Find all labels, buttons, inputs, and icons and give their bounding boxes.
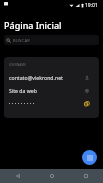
staticText: BUSCAR bbox=[13, 38, 31, 43]
button[interactable] bbox=[4, 97, 99, 110]
button[interactable]: Apps bbox=[82, 150, 97, 165]
button[interactable]: Home bbox=[35, 169, 69, 183]
staticText: contato@viekrond.net bbox=[9, 74, 84, 81]
staticText: Página Inicial bbox=[4, 19, 62, 31]
button[interactable]: Back bbox=[0, 169, 35, 183]
staticText: Site da web bbox=[9, 87, 84, 94]
button[interactable]: Página Inicial bbox=[4, 19, 62, 31]
button[interactable]: contato@viekrond.net bbox=[4, 71, 99, 84]
button[interactable]: Site da web bbox=[4, 84, 99, 97]
button[interactable]: Recents bbox=[69, 169, 103, 183]
button[interactable]: BUSCAR bbox=[4, 35, 99, 45]
staticText: USERNAME bbox=[9, 63, 26, 67]
staticText: 19:01 bbox=[85, 2, 98, 9]
